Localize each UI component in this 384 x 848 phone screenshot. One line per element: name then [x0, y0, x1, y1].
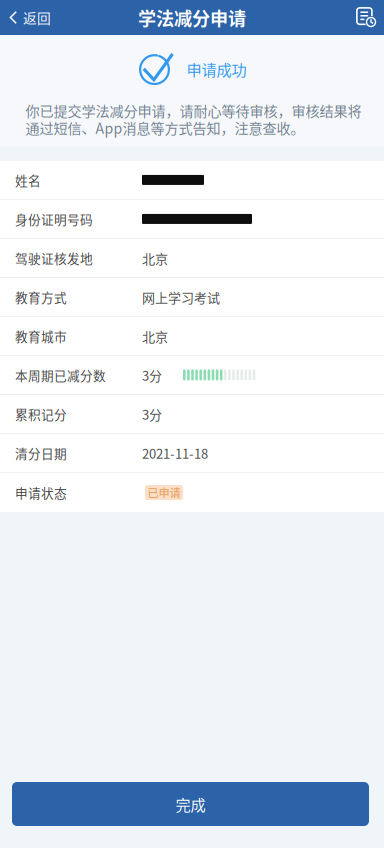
staticText: 申请状态 — [15, 483, 67, 502]
button[interactable]: 返回 — [0, 0, 61, 35]
staticText: 姓名 — [15, 171, 41, 189]
staticText: 申请成功 — [186, 58, 246, 80]
staticText: 网上学习考试 — [142, 287, 220, 306]
staticText: 累积记分 — [15, 405, 67, 423]
staticText: 北京 — [142, 326, 168, 345]
staticText: 完成 — [175, 793, 205, 815]
staticText: 3分 — [142, 365, 162, 384]
staticText: 3分 — [142, 404, 162, 423]
button[interactable]: 申请记录 — [346, 0, 384, 35]
button[interactable]: 完成 — [12, 782, 369, 826]
staticText: 清分日期 — [15, 444, 67, 462]
staticText: 2021-11-18 — [142, 443, 208, 462]
staticText: 教育方式 — [15, 288, 67, 306]
staticText: 北京 — [142, 248, 168, 267]
staticText: 教育城市 — [15, 327, 67, 345]
staticText: 驾驶证核发地 — [15, 249, 93, 267]
staticText: 已申请 — [147, 484, 180, 500]
staticText: 你已提交学法减分申请，请耐心等待审核，审核结果将通过短信、App消息等方式告知，… — [25, 100, 361, 138]
staticText: 本周期已减分数 — [15, 366, 106, 384]
staticText: 身份证明号码 — [15, 210, 93, 228]
staticText: 学法减分申请 — [138, 4, 246, 31]
staticText: 返回 — [23, 8, 51, 27]
